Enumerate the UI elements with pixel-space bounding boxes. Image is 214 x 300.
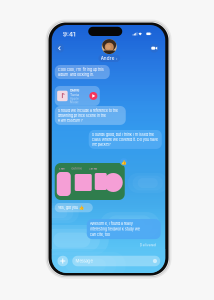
staticText: Awesome, I found a really bbox=[90, 221, 133, 226]
staticText: interesting fieldwork study we bbox=[90, 227, 140, 231]
staticText: Andre bbox=[101, 56, 115, 61]
staticText: Tuvia bbox=[70, 93, 79, 97]
button[interactable]: Andre bbox=[98, 39, 120, 62]
staticText: Apple Music bbox=[70, 97, 79, 104]
staticText: Yes, got you 👍 bbox=[58, 205, 84, 210]
staticText: Outline bbox=[71, 167, 82, 170]
button[interactable]: FaceTime video call bbox=[148, 42, 161, 55]
staticText: 👍 bbox=[121, 159, 127, 165]
staticText: Should we include a reference to the dro… bbox=[58, 108, 118, 123]
staticText: Canvas bbox=[89, 167, 97, 170]
staticText: › bbox=[116, 56, 118, 61]
staticText: Delivered bbox=[140, 243, 156, 247]
staticText: Bland bbox=[70, 88, 79, 92]
button[interactable]: Add attachment bbox=[57, 255, 69, 267]
staticText: Exam bbox=[59, 167, 65, 170]
staticText: 9:41 bbox=[63, 31, 76, 38]
staticText: Cool cool, I'm firing up this album and … bbox=[58, 67, 104, 77]
staticText: Message bbox=[75, 258, 92, 264]
staticText: can cite, too bbox=[90, 232, 110, 237]
button[interactable]: Back bbox=[53, 42, 66, 55]
staticText: Sounds good, but I think I missed the cl… bbox=[92, 132, 158, 147]
